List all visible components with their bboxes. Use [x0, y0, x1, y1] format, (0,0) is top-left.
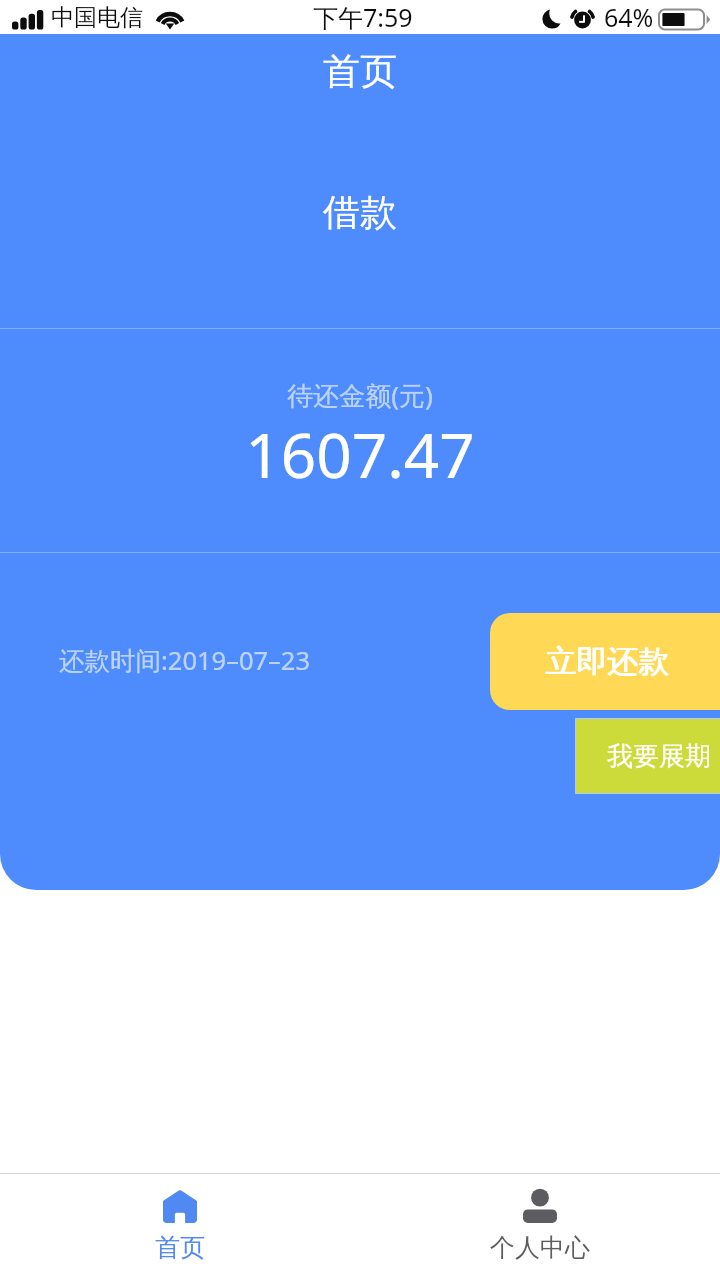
button[interactable]: 借款: [0, 152, 720, 274]
staticText: 中国电信: [51, 3, 143, 32]
staticText: 下午7:59: [313, 0, 413, 34]
button[interactable]: 立即还款: [490, 613, 720, 710]
staticText: 首页: [155, 1232, 205, 1263]
button[interactable]: 待还金额(元): [0, 329, 720, 552]
button[interactable]: Home: [0, 1174, 360, 1280]
staticText: 立即还款: [545, 642, 669, 681]
staticText: 立即还款: [546, 642, 670, 681]
staticText: 借款: [323, 189, 397, 236]
other: Profile: [523, 1189, 557, 1223]
button[interactable]: 我要展期: [576, 719, 720, 793]
other: Home: [163, 1189, 197, 1223]
staticText: 还款时间:2019–07–23: [59, 643, 311, 678]
staticText: 64%: [604, 0, 654, 34]
staticText: 个人中心: [490, 1232, 590, 1263]
staticText: 待还金额(元): [0, 377, 720, 413]
staticText: 1607.47: [0, 412, 720, 496]
staticText: 我要展期: [607, 740, 711, 773]
staticText: 首页: [0, 48, 720, 95]
button[interactable]: Profile: [360, 1174, 720, 1280]
